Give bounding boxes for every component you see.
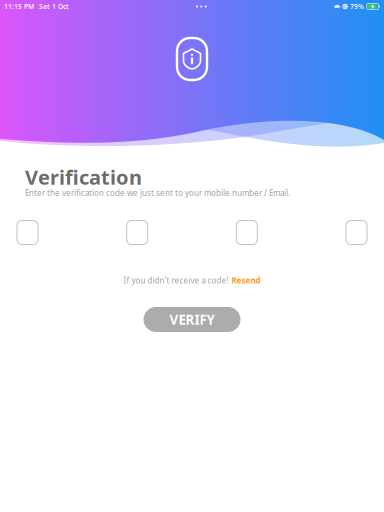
staticText: Verification: [25, 164, 142, 190]
button[interactable]: Code digit 3: [236, 220, 257, 244]
staticText: If you didn't receive a code!: [123, 275, 228, 286]
button[interactable]: Code digit 1: [17, 220, 38, 244]
button[interactable]: Code digit 2: [127, 220, 148, 244]
staticText: Resend: [231, 275, 260, 286]
staticText: VERIFY: [169, 311, 214, 328]
staticText: Enter the verification code we just sent…: [25, 188, 290, 198]
staticText: 11:15 PM: [4, 2, 34, 11]
staticText: 79%: [350, 2, 364, 11]
button[interactable]: Code digit 4: [346, 220, 367, 244]
staticText: Sat 1 Oct: [39, 2, 69, 11]
button[interactable]: Resend: [231, 275, 260, 286]
button[interactable]: VERIFY: [143, 307, 240, 332]
